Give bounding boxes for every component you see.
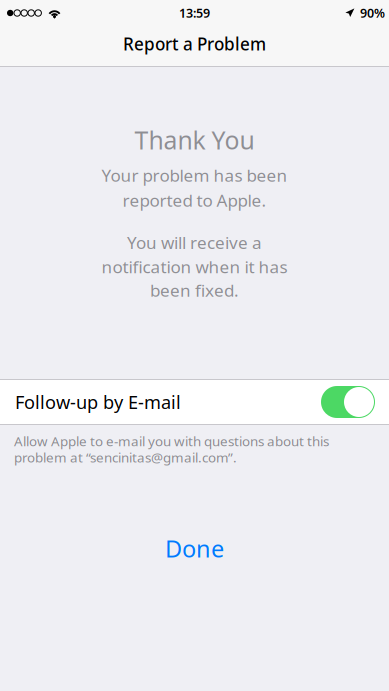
staticText: Follow-up by E-mail (15, 390, 181, 414)
staticText: reported to Apple. (122, 188, 266, 212)
staticText: 90% (360, 4, 385, 22)
staticText: problem at “sencinitas@gmail.com”. (14, 448, 237, 466)
button[interactable]: Done (139, 524, 250, 572)
staticText: Your problem has been (101, 164, 287, 187)
staticText: You will receive a (127, 231, 262, 254)
staticText: Allow Apple to e-mail you with questions… (14, 432, 329, 450)
button[interactable]: Follow-up by E-mail (0, 380, 389, 424)
staticText: Thank You (134, 123, 254, 157)
staticText: been fixed. (150, 279, 239, 302)
staticText: Done (165, 532, 224, 564)
staticText: Report a Problem (123, 32, 266, 56)
staticText: notification when it has (101, 255, 287, 278)
staticText: 13:59 (179, 4, 210, 22)
